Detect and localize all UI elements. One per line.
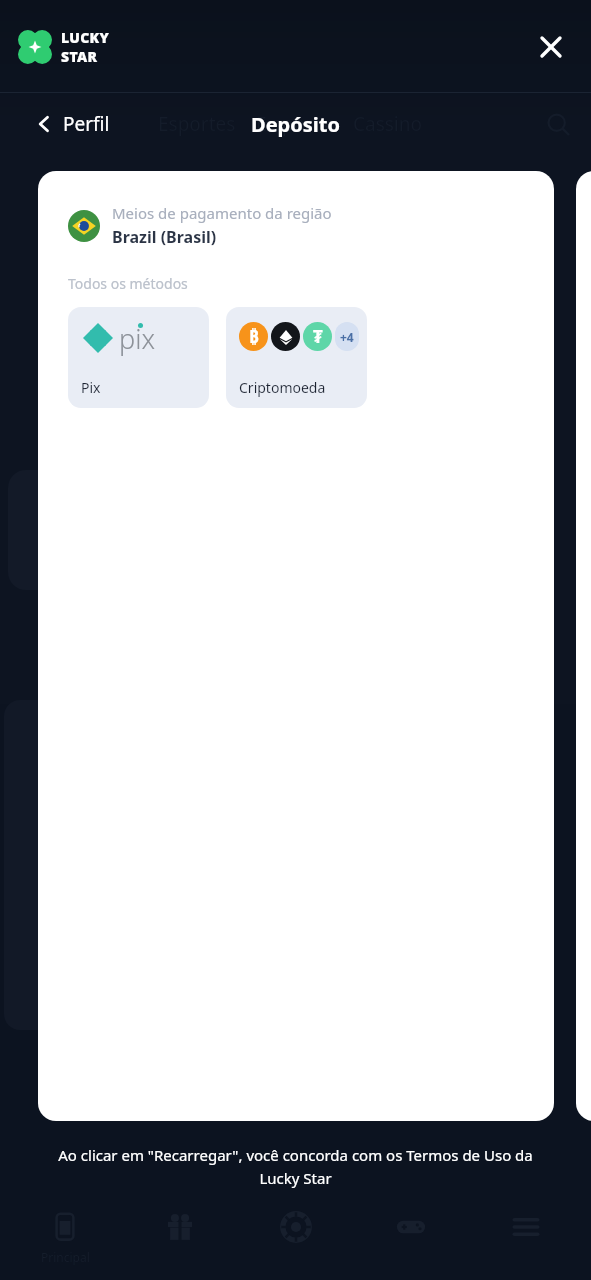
staticText: Criptomoeda [239, 378, 326, 397]
staticText: Todos os métodos [68, 274, 188, 293]
staticText: STAR [61, 47, 98, 66]
staticText: Meios de pagamento da região [112, 203, 332, 223]
button[interactable]: Casino [246, 1212, 346, 1265]
button[interactable]: Close [529, 25, 573, 69]
staticText: Ao clicar em "Recarregar", você concorda… [42, 1145, 549, 1188]
staticText: LUCKY [61, 28, 110, 47]
staticText: +4 [340, 329, 354, 345]
staticText: Depósito [251, 111, 340, 138]
button[interactable]: LUCKY [18, 28, 110, 66]
staticText: pix [119, 320, 156, 356]
staticText: Brazil (Brasil) [112, 226, 217, 248]
button[interactable]: Bonus [130, 1212, 230, 1265]
button[interactable]: Home [15, 1212, 115, 1265]
staticText: ₮ [313, 325, 323, 348]
staticText: Perfil [63, 111, 110, 137]
button[interactable]: Perfil [36, 111, 110, 137]
staticText: Pix [81, 378, 101, 397]
button[interactable]: pix [68, 307, 209, 408]
button[interactable]: ₿ [226, 307, 367, 408]
staticText: ₿ [249, 325, 259, 348]
staticText: E-sports [256, 111, 329, 137]
